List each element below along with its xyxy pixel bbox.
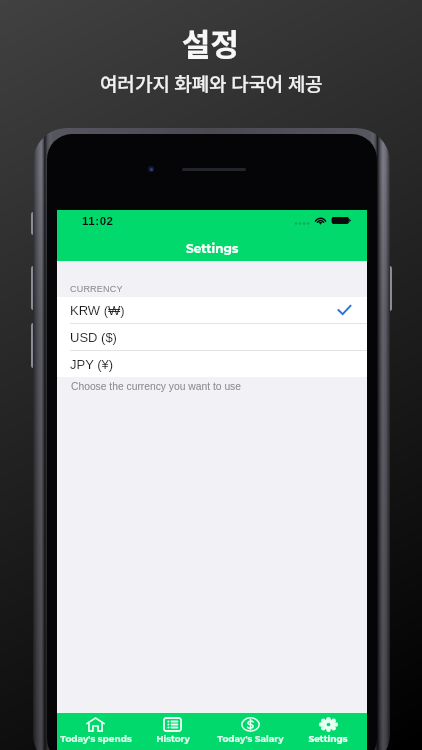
button[interactable]: USD ($)	[57, 324, 367, 350]
other: Settings	[319, 717, 338, 732]
staticText: 설정	[182, 20, 240, 65]
button[interactable]: JPY (¥)	[57, 351, 367, 377]
button[interactable]: Today's spends	[57, 713, 134, 750]
staticText: Settings	[308, 733, 348, 744]
other: Today's spends	[86, 717, 105, 732]
button[interactable]: History	[134, 713, 211, 750]
staticText: Today's spends	[60, 733, 132, 744]
staticText: 11:02	[82, 215, 114, 228]
staticText: 여러가지 화폐와 다국어 제공	[100, 69, 323, 97]
button[interactable]: KRW (₩)	[57, 297, 367, 323]
other: Today's Salary	[241, 717, 260, 732]
staticText: Choose the currency you want to use	[71, 381, 241, 393]
staticText: JPY (¥)	[70, 357, 114, 372]
staticText: Settings	[186, 241, 239, 256]
staticText: CURRENCY	[70, 284, 123, 294]
staticText: KRW (₩)	[70, 303, 125, 318]
other: History	[163, 717, 182, 732]
button[interactable]: Settings	[289, 713, 367, 750]
staticText: History	[156, 733, 190, 744]
staticText: Today's Salary	[217, 733, 284, 744]
staticText: USD ($)	[70, 330, 117, 345]
button[interactable]: Today's Salary	[211, 713, 289, 750]
